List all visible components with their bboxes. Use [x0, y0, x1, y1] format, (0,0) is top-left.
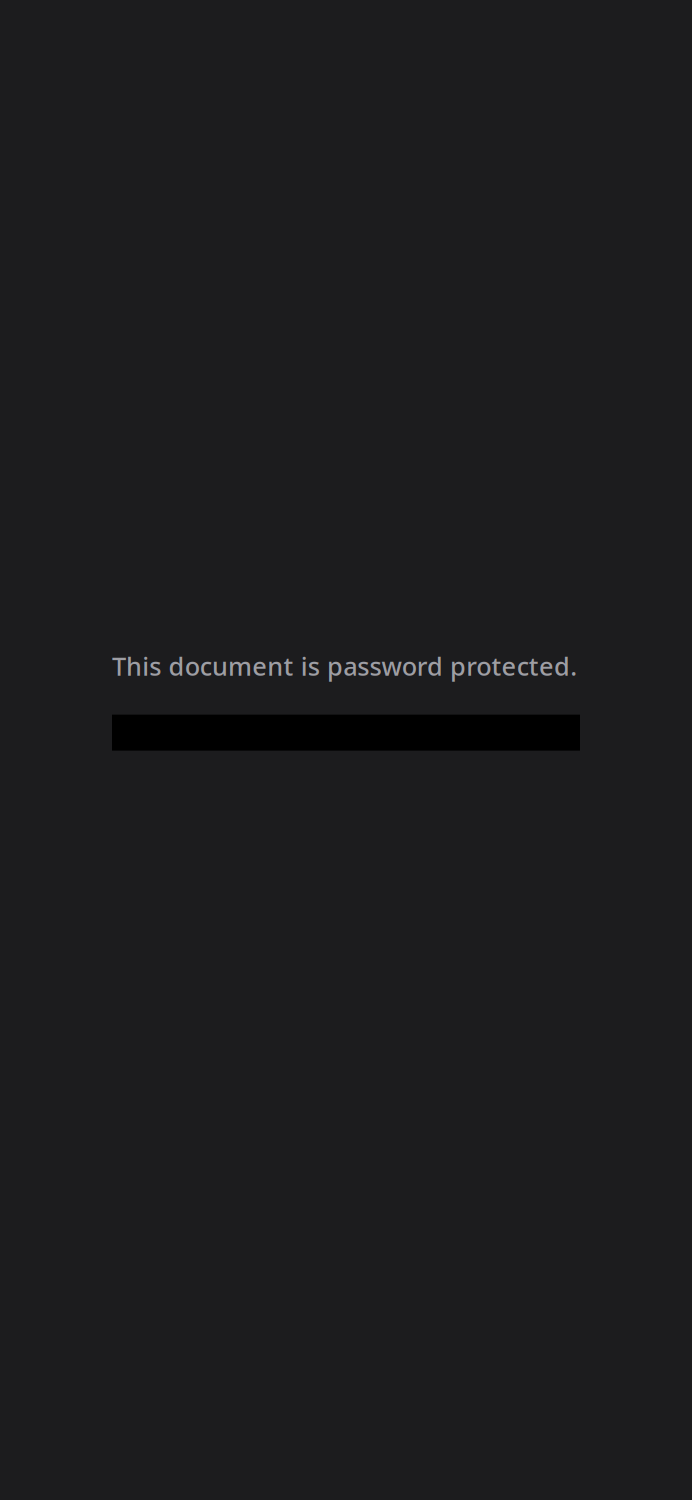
staticText: This document is password protected.	[112, 649, 577, 683]
